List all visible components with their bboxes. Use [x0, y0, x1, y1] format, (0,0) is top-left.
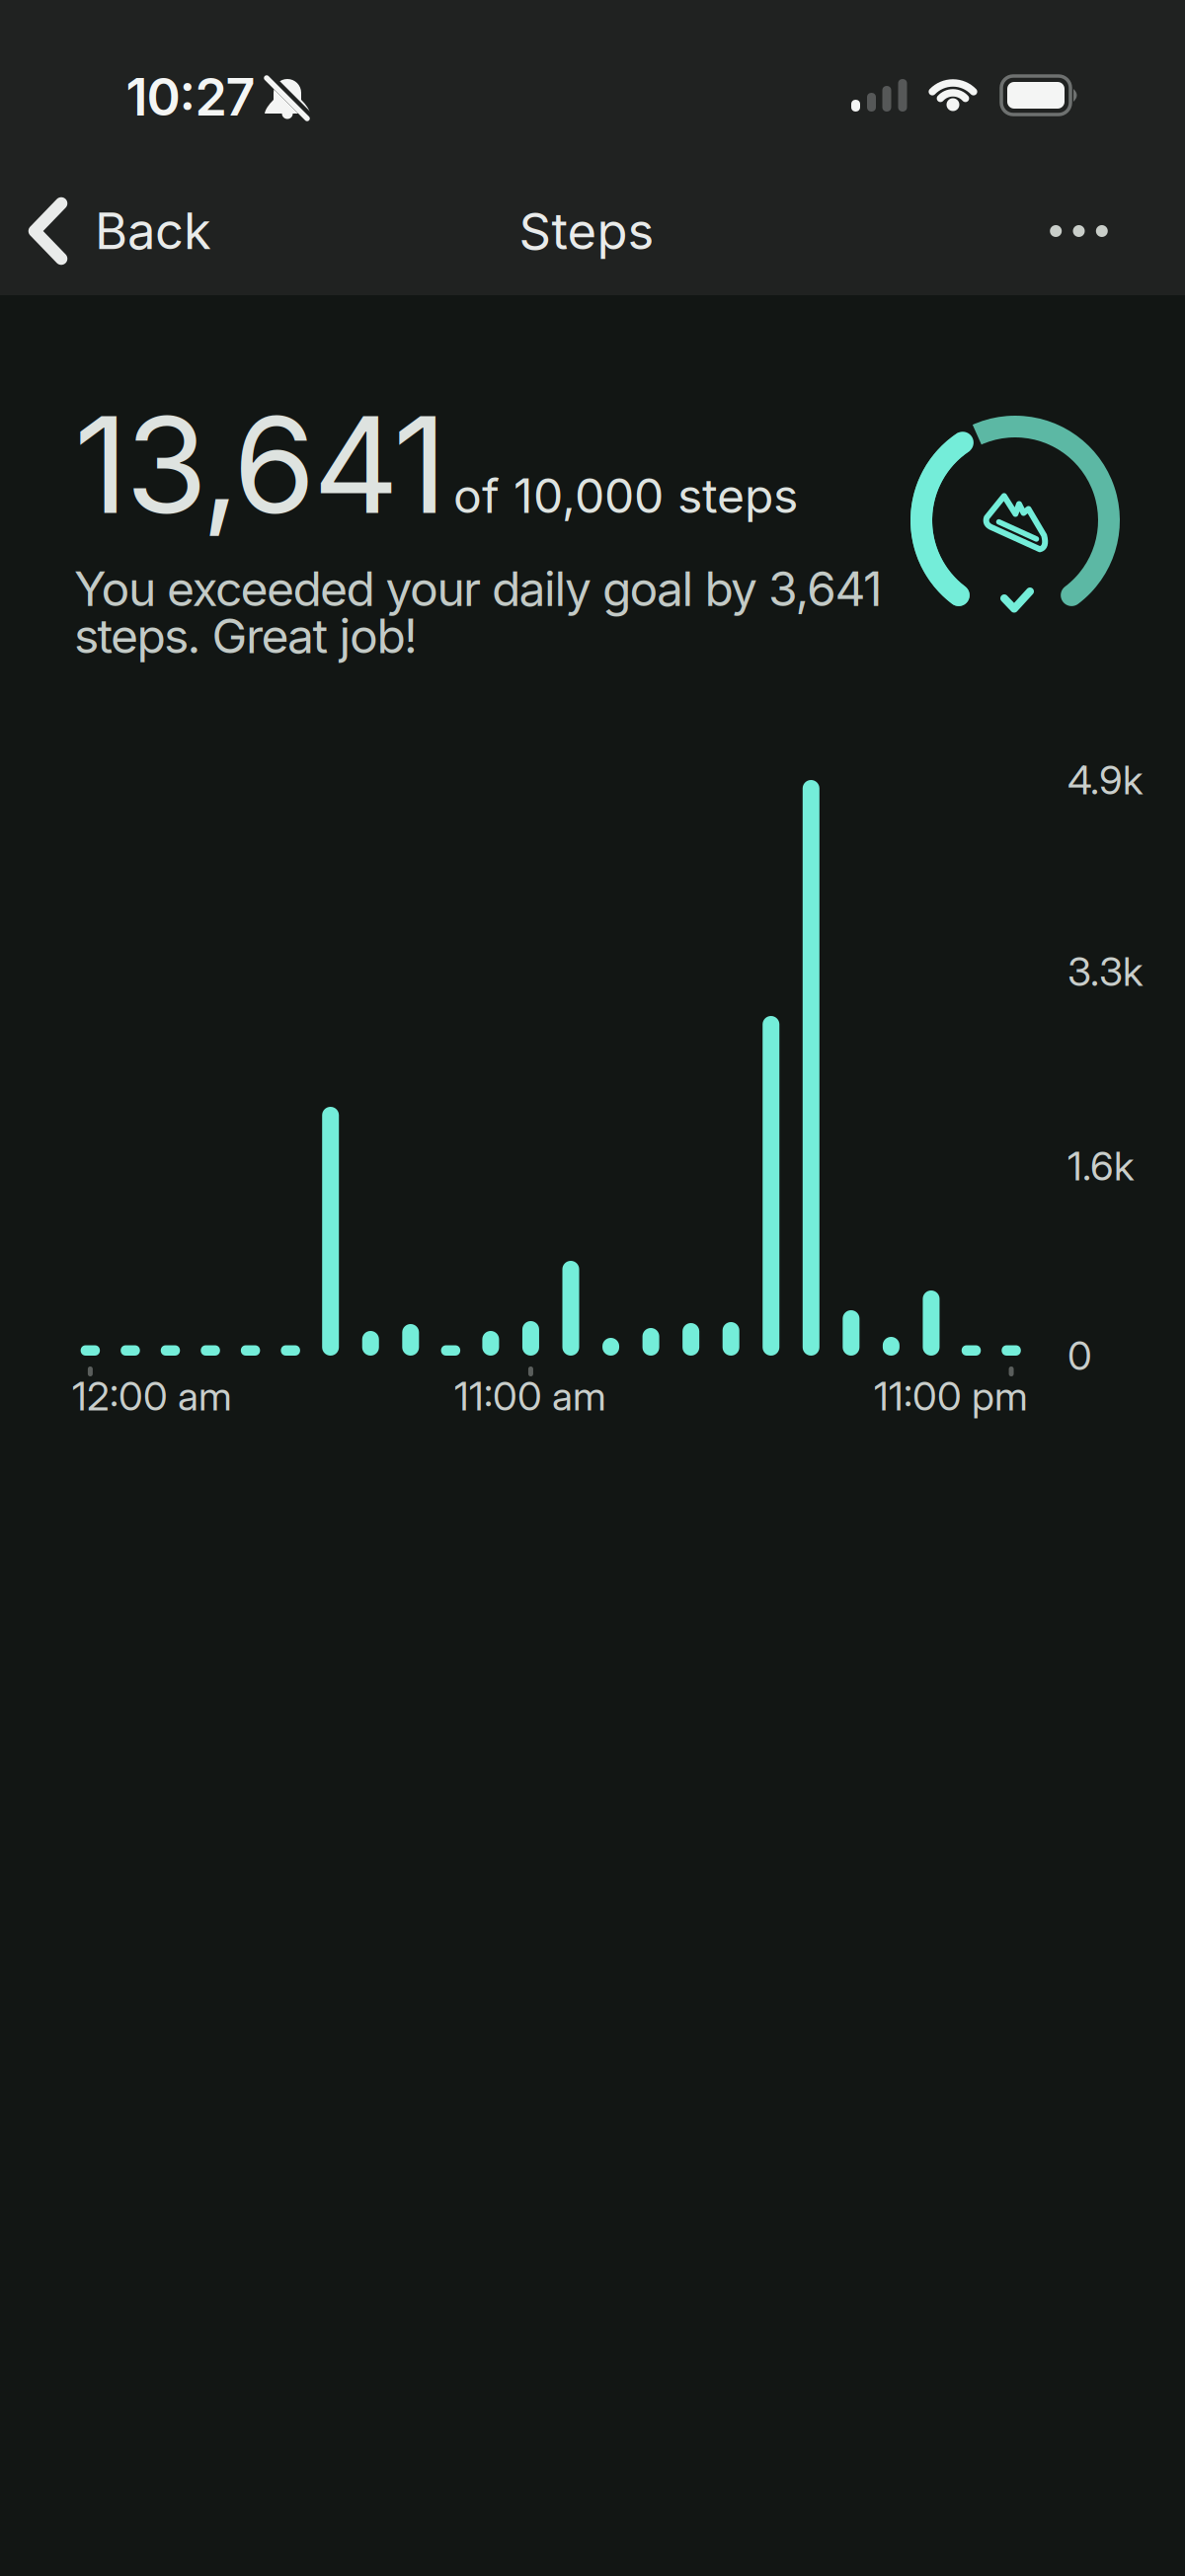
staticText: steps. Great job!: [74, 608, 418, 664]
staticText: 4.9k: [1067, 757, 1143, 803]
staticText: 10:27: [126, 66, 255, 127]
button[interactable]: [1020, 192, 1138, 271]
staticText: 11:00 am: [454, 1373, 606, 1419]
staticText: 13,641: [74, 386, 447, 543]
staticText: Steps: [519, 202, 654, 261]
staticText: 0: [1067, 1332, 1092, 1379]
staticText: 11:00 pm: [874, 1373, 1028, 1419]
staticText: 1.6k: [1067, 1143, 1134, 1189]
staticText: 12:00 am: [72, 1373, 232, 1419]
button[interactable]: Back: [28, 194, 215, 269]
staticText: 3.3k: [1067, 948, 1143, 995]
staticText: Back: [95, 201, 211, 260]
staticText: of 10,000 steps: [453, 468, 798, 523]
staticText: You exceeded your daily goal by 3,641: [74, 561, 883, 617]
